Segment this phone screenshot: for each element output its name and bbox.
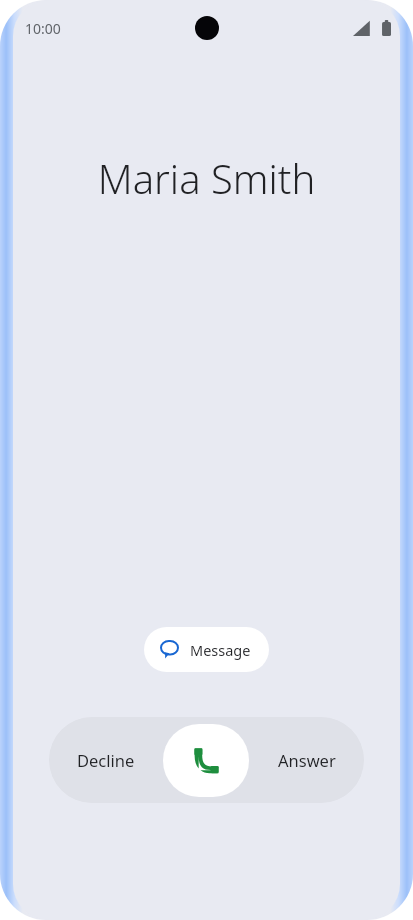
button[interactable]: Decline [49, 717, 163, 803]
button[interactable]: Answer call [163, 724, 249, 797]
staticText: Maria Smith [0, 151, 413, 205]
staticText: Answer [278, 749, 336, 771]
staticText: Message [190, 640, 251, 660]
staticText: 10:00 [25, 19, 61, 38]
staticText: Decline [77, 749, 135, 771]
button[interactable]: Answer [249, 717, 364, 803]
button[interactable]: Message [144, 627, 269, 672]
